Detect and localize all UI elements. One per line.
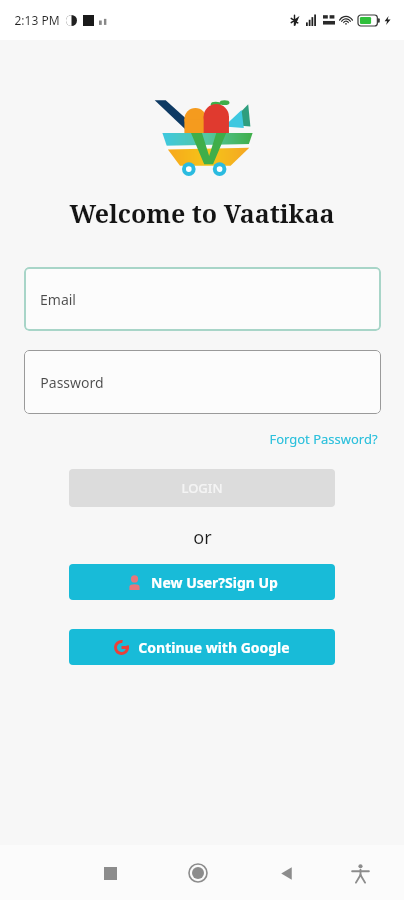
button[interactable]: Password	[24, 350, 381, 414]
button[interactable]: Back	[264, 851, 308, 895]
staticText: or	[193, 525, 212, 550]
staticText: 2:13 PM	[14, 12, 60, 28]
staticText: Password	[40, 373, 104, 392]
button[interactable]: Home	[176, 851, 220, 895]
staticText: Forgot Password?	[269, 430, 378, 448]
staticText: LOGIN	[181, 479, 223, 497]
button[interactable]: Email	[24, 267, 381, 331]
button[interactable]: Recents	[88, 851, 132, 895]
staticText: Continue with Google	[138, 638, 290, 657]
staticText: Email	[40, 290, 76, 309]
staticText: New User?Sign Up	[151, 573, 278, 592]
button[interactable]: Forgot Password?	[267, 428, 380, 450]
button[interactable]: Continue with Google	[69, 629, 335, 665]
button[interactable]: Accessibility	[338, 851, 382, 895]
button[interactable]: New User?Sign Up	[69, 564, 335, 600]
staticText: Welcome to Vaatikaa	[69, 196, 335, 230]
